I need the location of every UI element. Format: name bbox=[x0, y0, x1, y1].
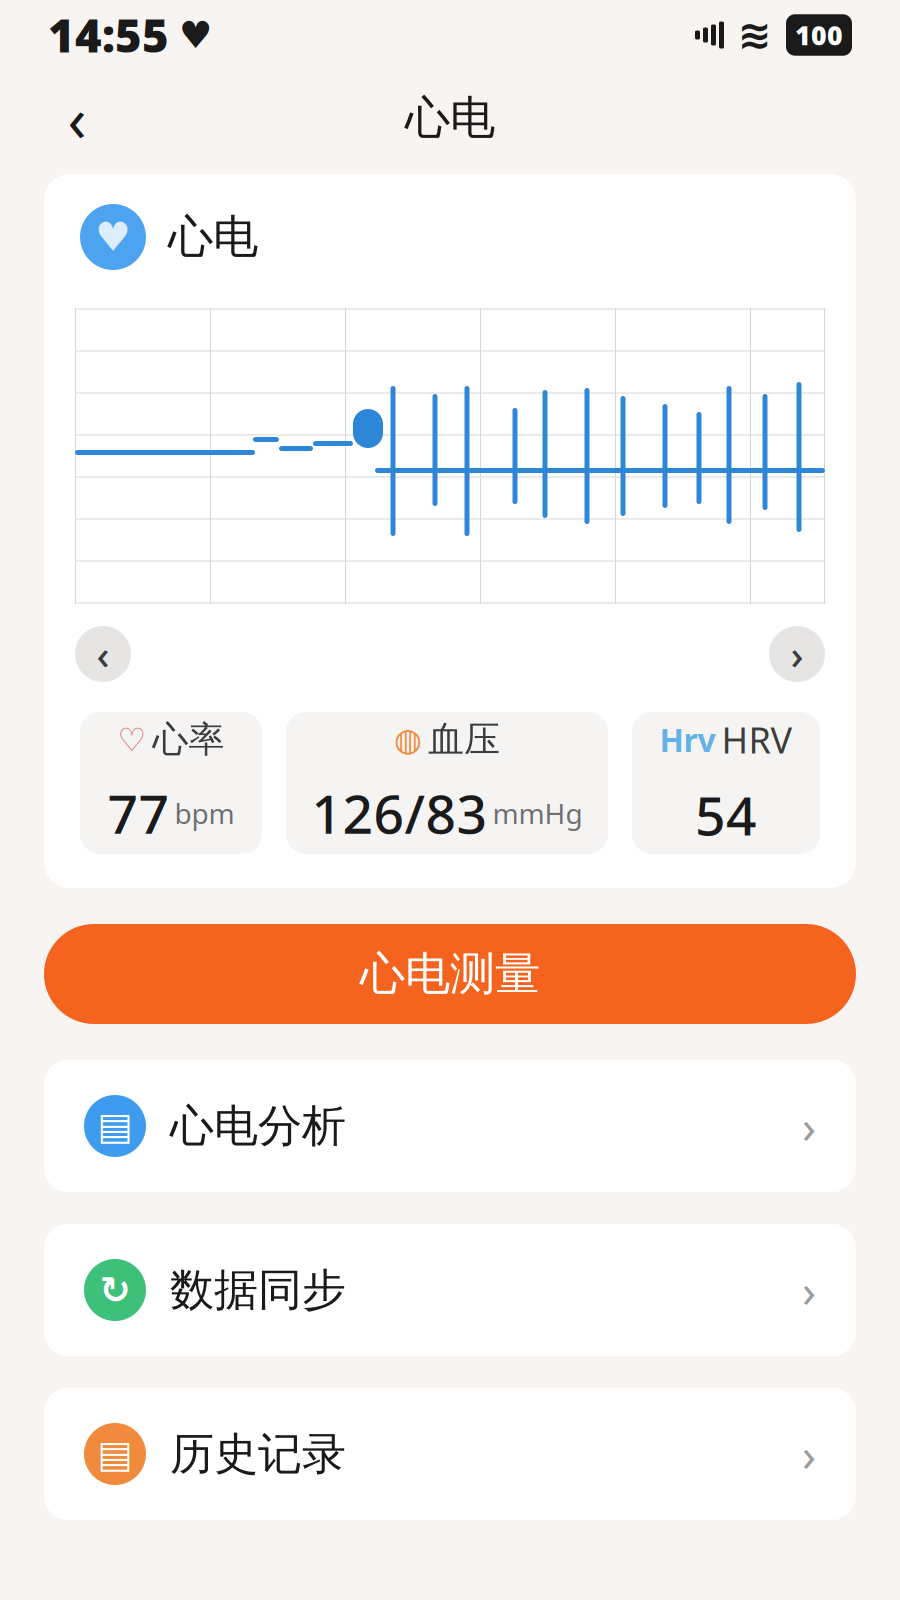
staticText: ↻ bbox=[99, 1269, 130, 1311]
staticText: ‹ bbox=[96, 627, 109, 680]
button[interactable]: ↻ bbox=[44, 1224, 856, 1356]
staticText: 心电分析 bbox=[170, 1099, 346, 1153]
staticText: › bbox=[802, 1096, 816, 1156]
staticText: ◍ bbox=[394, 721, 422, 758]
staticText: mmHg bbox=[492, 794, 582, 832]
staticText: 14:55 bbox=[48, 5, 169, 65]
staticText: HRV bbox=[721, 716, 792, 763]
staticText: ‹ bbox=[67, 77, 86, 159]
staticText: 126/83 bbox=[311, 778, 487, 848]
staticText: ≋ bbox=[738, 12, 772, 58]
staticText: 心电测量 bbox=[360, 946, 540, 1002]
staticText: bpm bbox=[174, 794, 234, 832]
staticText: ♥ bbox=[179, 14, 212, 56]
button[interactable]: Previous bbox=[75, 626, 131, 682]
staticText: 心电 bbox=[405, 90, 495, 146]
staticText: 血压 bbox=[428, 717, 500, 762]
staticText: ♡ bbox=[117, 721, 146, 758]
staticText: 54 bbox=[695, 779, 757, 850]
staticText: ♥ bbox=[95, 214, 131, 260]
staticText: ▤ bbox=[97, 1105, 132, 1147]
button[interactable]: Back bbox=[42, 83, 112, 153]
staticText: Hrv bbox=[659, 718, 715, 761]
staticText: 心电 bbox=[168, 209, 258, 265]
staticText: › bbox=[790, 627, 803, 680]
button[interactable]: Next bbox=[769, 626, 825, 682]
staticText: 数据同步 bbox=[170, 1263, 346, 1317]
staticText: 历史记录 bbox=[170, 1427, 346, 1481]
staticText: 100 bbox=[795, 17, 843, 53]
staticText: › bbox=[802, 1424, 816, 1484]
staticText: 77 bbox=[107, 778, 169, 848]
button[interactable]: 心电测量 bbox=[44, 924, 856, 1024]
staticText: ▤ bbox=[97, 1433, 132, 1475]
button[interactable]: ▤ bbox=[44, 1388, 856, 1520]
button[interactable]: ▤ bbox=[44, 1060, 856, 1192]
staticText: › bbox=[802, 1260, 816, 1320]
staticText: 心率 bbox=[152, 717, 224, 762]
